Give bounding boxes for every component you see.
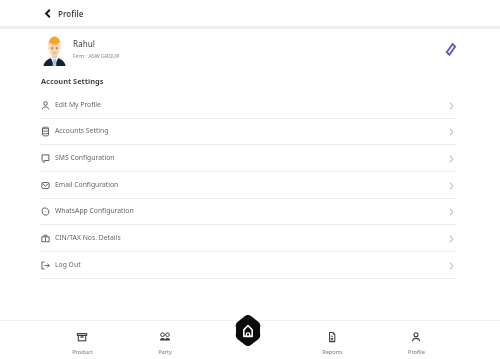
staticText: Reports <box>322 348 343 356</box>
button[interactable]: Party <box>140 320 190 359</box>
staticText: SMS Configuration <box>55 153 115 162</box>
staticText: Log Out <box>55 260 81 269</box>
button[interactable]: Home <box>236 315 260 346</box>
button[interactable]: Profile <box>391 320 441 359</box>
button[interactable]: Accounts Setting <box>0 118 500 145</box>
staticText: WhatsApp Configuration <box>55 206 134 215</box>
staticText: Party <box>158 348 172 356</box>
button[interactable]: Edit My Profile <box>0 92 500 119</box>
button[interactable]: Reports <box>307 320 357 359</box>
button[interactable]: Edit profile <box>440 39 460 59</box>
staticText: Rahul <box>73 38 95 49</box>
button[interactable]: Email Configuration <box>0 172 500 199</box>
button[interactable]: Back <box>41 7 53 19</box>
button[interactable]: WhatsApp Configuration <box>0 198 500 225</box>
button[interactable]: SMS Configuration <box>0 145 500 172</box>
staticText: Profile <box>58 8 84 19</box>
staticText: Edit My Profile <box>55 100 101 109</box>
staticText: Profile <box>408 348 425 356</box>
staticText: Accounts Setting <box>55 126 109 135</box>
staticText: Firm : ASW GROUP <box>73 52 120 59</box>
button[interactable]: Log Out <box>0 252 500 279</box>
button[interactable]: CIN/TAX Nos. Details <box>0 225 500 252</box>
staticText: Product <box>72 348 93 356</box>
button[interactable]: Product <box>57 320 107 359</box>
staticText: CIN/TAX Nos. Details <box>55 233 121 242</box>
staticText: Email Configuration <box>55 180 119 189</box>
staticText: Account Settings <box>41 76 104 86</box>
